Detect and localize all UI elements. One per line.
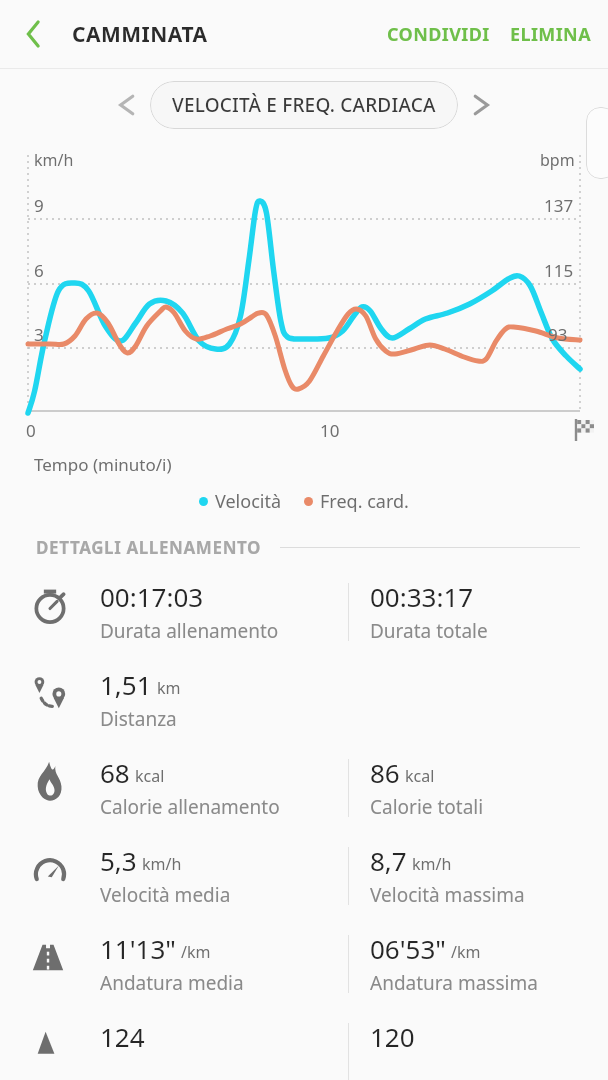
button[interactable]: Previous chart — [104, 83, 148, 127]
button[interactable]: CONDIVIDI — [377, 10, 500, 59]
staticText: 68 — [100, 755, 130, 790]
staticText: 10 — [320, 419, 340, 442]
button[interactable]: 68 — [0, 749, 608, 837]
button[interactable]: 5,3 — [0, 837, 608, 925]
staticText: Calorie totali — [370, 794, 484, 820]
staticText: kcal — [405, 765, 435, 787]
staticText: /km — [181, 941, 211, 963]
staticText: ELIMINA — [510, 22, 592, 47]
staticText: 86 — [370, 755, 400, 790]
button[interactable]: Next chart — [460, 83, 504, 127]
staticText: 115 — [544, 259, 574, 282]
staticText: km/h — [412, 853, 452, 875]
staticText: Distanza — [100, 706, 177, 732]
staticText: 06'53" — [370, 931, 446, 966]
staticText: DETTAGLI ALLENAMENTO — [36, 536, 262, 559]
staticText: 137 — [544, 194, 574, 217]
button[interactable]: 124 — [0, 1013, 608, 1080]
staticText: Tempo (minuto/i) — [34, 453, 172, 476]
staticText: km/h — [34, 149, 74, 171]
button[interactable]: 1,51 — [0, 661, 608, 749]
button[interactable]: Back — [10, 10, 58, 58]
button[interactable]: ELIMINA — [500, 10, 608, 59]
staticText: Freq. card. — [320, 489, 409, 514]
staticText: 5,3 — [100, 843, 137, 878]
staticText: 6 — [34, 259, 44, 282]
staticText: VELOCITÀ E FREQ. CARDIACA — [172, 92, 436, 118]
staticText: Durata allenamento — [100, 618, 279, 644]
staticText: CONDIVIDI — [387, 22, 490, 47]
staticText: 3 — [34, 323, 44, 346]
staticText: Velocità massima — [370, 882, 525, 908]
staticText: Calorie allenamento — [100, 794, 280, 820]
staticText: 11'13" — [100, 931, 176, 966]
staticText: km — [157, 677, 181, 699]
staticText: 120 — [370, 1019, 415, 1054]
button[interactable]: 00:17:03 — [0, 573, 608, 661]
staticText: kcal — [135, 765, 165, 787]
staticText: bpm — [540, 149, 575, 171]
staticText: 9 — [34, 194, 44, 217]
button[interactable]: VELOCITÀ E FREQ. CARDIACA — [150, 81, 458, 129]
staticText: Velocità — [215, 489, 282, 514]
staticText: km/h — [142, 853, 182, 875]
staticText: Velocità media — [100, 882, 231, 908]
staticText: Andatura media — [100, 970, 244, 996]
staticText: /km — [451, 941, 481, 963]
button[interactable]: 11'13" — [0, 925, 608, 1013]
staticText: 1,51 — [100, 667, 152, 702]
staticText: 0 — [26, 419, 36, 442]
staticText: 124 — [100, 1019, 145, 1054]
staticText: 00:17:03 — [100, 579, 204, 614]
staticText: Durata totale — [370, 618, 488, 644]
staticText: Andatura massima — [370, 970, 538, 996]
staticText: 8,7 — [370, 843, 407, 878]
staticText: CAMMINATA — [72, 20, 208, 49]
staticText: 93 — [548, 323, 568, 346]
staticText: 00:33:17 — [370, 579, 474, 614]
